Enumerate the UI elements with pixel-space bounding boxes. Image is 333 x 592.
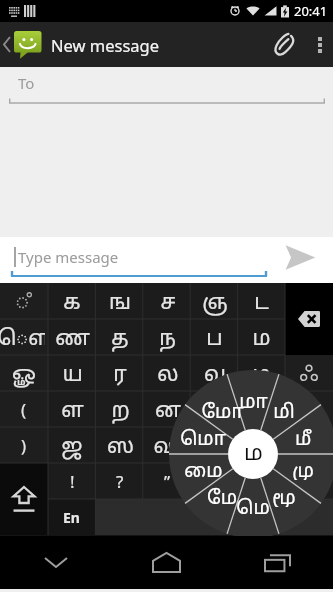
button[interactable]: ண bbox=[48, 319, 96, 355]
staticText: ம bbox=[252, 327, 271, 353]
button[interactable]: To bbox=[0, 67, 333, 104]
button[interactable]: ய bbox=[48, 355, 96, 391]
button[interactable]: ந bbox=[144, 319, 191, 355]
staticText: வ bbox=[204, 363, 226, 389]
staticText: ◌ௌ bbox=[0, 327, 45, 353]
staticText: க bbox=[63, 291, 81, 317]
staticText: மு bbox=[292, 460, 314, 480]
button[interactable]: ஹ bbox=[191, 427, 238, 463]
button[interactable]: Shift bbox=[0, 463, 48, 535]
button[interactable]: Symbols bbox=[285, 355, 333, 391]
staticText: ங bbox=[109, 291, 131, 317]
button[interactable]: ஜ bbox=[48, 427, 96, 463]
button[interactable]: மே bbox=[196, 487, 248, 507]
staticText: ந bbox=[159, 327, 176, 353]
button[interactable]: மெ bbox=[227, 497, 279, 517]
button[interactable]: மொ bbox=[177, 428, 229, 448]
button[interactable]: ம bbox=[238, 319, 285, 355]
staticText: ஞ bbox=[202, 291, 228, 317]
button[interactable]: ி bbox=[238, 391, 285, 427]
button[interactable]: மூ bbox=[258, 487, 310, 507]
staticText: ஜ bbox=[61, 435, 83, 461]
button[interactable]: Send bbox=[267, 237, 333, 283]
staticText: மி bbox=[273, 401, 295, 421]
staticText: ி bbox=[253, 399, 271, 425]
staticText: ? bbox=[116, 470, 124, 493]
button[interactable]: ஷ bbox=[144, 427, 191, 463]
staticText: ல bbox=[157, 363, 179, 389]
button[interactable]: ” bbox=[144, 463, 191, 499]
button[interactable]: மோ bbox=[196, 401, 248, 421]
button[interactable]: மி bbox=[258, 401, 310, 421]
button[interactable]: ங bbox=[96, 283, 144, 319]
staticText: En bbox=[63, 508, 80, 527]
button[interactable]: க bbox=[48, 283, 96, 319]
button[interactable]: Symbols bbox=[285, 463, 333, 499]
button[interactable]: En bbox=[48, 499, 95, 535]
staticText: த bbox=[111, 327, 129, 353]
staticText: ஃ bbox=[252, 435, 271, 461]
staticText: ” bbox=[164, 470, 171, 493]
staticText: To bbox=[18, 73, 35, 93]
button[interactable]: Hide keyboard bbox=[0, 536, 111, 589]
staticText: ய bbox=[62, 363, 83, 389]
staticText: ( bbox=[21, 398, 27, 421]
button[interactable]: Recents bbox=[222, 536, 333, 589]
button[interactable]: Space bbox=[95, 499, 333, 535]
button[interactable]: ( bbox=[0, 391, 48, 427]
button[interactable]: ஸ bbox=[96, 427, 144, 463]
button[interactable]: Symbols bbox=[285, 427, 333, 463]
staticText: Type message bbox=[18, 247, 119, 267]
button[interactable]: ப bbox=[191, 319, 238, 355]
staticText: ௐ bbox=[12, 363, 36, 389]
button[interactable] bbox=[238, 463, 285, 499]
button[interactable]: ◌ௌ bbox=[0, 319, 48, 355]
button[interactable]: ம bbox=[228, 440, 278, 468]
staticText: ஷ bbox=[153, 435, 182, 461]
button[interactable]: More options bbox=[307, 22, 333, 67]
button[interactable]: New message bbox=[0, 22, 160, 67]
button[interactable]: ஞ bbox=[191, 283, 238, 319]
staticText: ா bbox=[202, 399, 228, 425]
button[interactable]: Backspace bbox=[285, 283, 333, 319]
button[interactable]: ற bbox=[96, 391, 144, 427]
button[interactable]: ள bbox=[48, 391, 96, 427]
button[interactable]: ) bbox=[0, 427, 48, 463]
staticText: மொ bbox=[180, 428, 226, 448]
button[interactable]: ௐ bbox=[0, 355, 48, 391]
button[interactable]: Backspace bbox=[285, 319, 333, 355]
button[interactable]: Type message bbox=[0, 237, 267, 283]
button[interactable]: வ bbox=[191, 355, 238, 391]
button[interactable]: ச bbox=[144, 283, 191, 319]
button[interactable]: ஃ bbox=[238, 427, 285, 463]
button[interactable] bbox=[0, 283, 48, 319]
staticText: ட bbox=[254, 291, 269, 317]
staticText: மே bbox=[207, 487, 237, 507]
button[interactable]: ! bbox=[48, 463, 96, 499]
staticText: ண bbox=[55, 327, 90, 353]
staticText: மோ bbox=[201, 401, 244, 421]
button[interactable]: ழ bbox=[238, 355, 285, 391]
staticText: ! bbox=[70, 470, 75, 493]
button[interactable]: ா bbox=[191, 391, 238, 427]
button[interactable]: மை bbox=[177, 460, 229, 480]
button[interactable]: Attach bbox=[261, 22, 307, 67]
button[interactable]: ன bbox=[144, 391, 191, 427]
button[interactable] bbox=[191, 463, 238, 499]
staticText: ள bbox=[61, 399, 84, 425]
button[interactable]: ட bbox=[238, 283, 285, 319]
button[interactable]: மு bbox=[277, 460, 329, 480]
staticText: ) bbox=[21, 434, 27, 457]
button[interactable]: மீ bbox=[277, 428, 329, 448]
button[interactable]: ? bbox=[96, 463, 144, 499]
button[interactable]: Symbols keyboard bbox=[0, 499, 48, 535]
button[interactable]: Home bbox=[111, 536, 222, 589]
button[interactable] bbox=[0, 463, 48, 499]
button[interactable]: த bbox=[96, 319, 144, 355]
button[interactable]: Symbols bbox=[285, 391, 333, 427]
staticText: 20:41 bbox=[294, 2, 328, 20]
button[interactable]: ர bbox=[96, 355, 144, 391]
button[interactable]: ல bbox=[144, 355, 191, 391]
staticText: ம bbox=[244, 441, 263, 468]
button[interactable]: மா bbox=[227, 391, 279, 411]
